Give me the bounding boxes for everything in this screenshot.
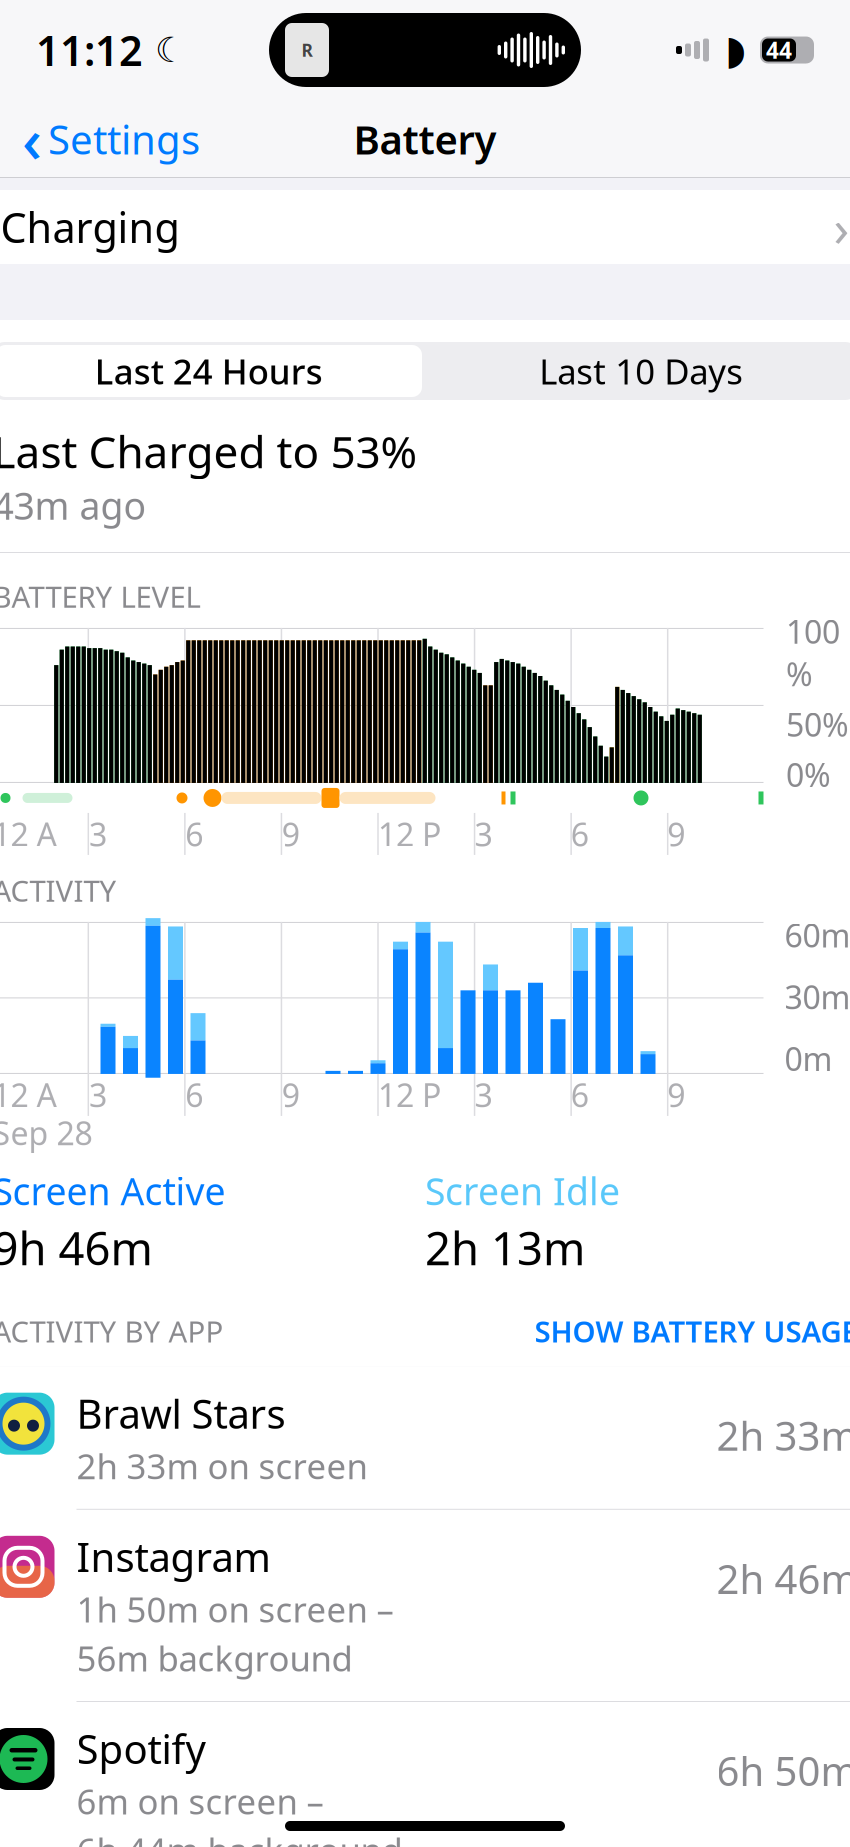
staticText: 12 A <box>0 1074 56 1116</box>
staticText: 6 <box>571 1074 589 1116</box>
staticText: 6 <box>185 1074 203 1116</box>
staticText: 6 <box>185 813 203 855</box>
staticText: 100% <box>786 610 840 695</box>
staticText: 12 P <box>378 1074 441 1116</box>
staticText: › <box>833 193 849 261</box>
staticText: ☾ <box>143 30 186 70</box>
staticText: R <box>301 38 312 61</box>
staticText: ACTIVITY <box>0 871 116 910</box>
staticText: 6h 50m <box>716 1744 850 1797</box>
staticText: 6 <box>571 813 589 855</box>
staticText: Charging <box>0 200 179 254</box>
staticText: 0% <box>786 753 831 796</box>
staticText: 9 <box>667 813 685 855</box>
staticText: ◗ <box>725 27 746 73</box>
staticText: Screen Active <box>0 1166 225 1215</box>
button[interactable]: Spotify <box>0 1702 850 1847</box>
button[interactable]: Last 24 Hours <box>0 342 425 400</box>
staticText: 3 <box>474 1074 492 1116</box>
staticText: 9 <box>282 1074 300 1116</box>
staticText: 2h 33m <box>716 1409 850 1462</box>
staticText: SHOW BATTERY USAGE <box>534 1312 850 1351</box>
staticText: Settings <box>48 112 200 165</box>
staticText: 30m <box>784 976 850 1018</box>
staticText: 2h 33m on screen <box>76 1443 367 1489</box>
button[interactable]: Charging <box>0 190 850 264</box>
staticText: 6m on screen – <box>76 1778 323 1824</box>
staticText: 44 <box>766 35 792 65</box>
staticText: 9h 46m <box>0 1217 152 1278</box>
staticText: 12 A <box>0 813 56 855</box>
staticText: Brawl Stars <box>76 1387 285 1440</box>
staticText: 50% <box>786 703 849 745</box>
staticText: 3 <box>474 813 492 855</box>
staticText: Last Charged to 53% <box>0 422 417 480</box>
staticText: ACTIVITY BY APP <box>0 1312 223 1351</box>
staticText: Screen Idle <box>425 1166 620 1215</box>
button[interactable]: Brawl Stars <box>0 1367 850 1510</box>
staticText: 12 P <box>378 813 441 855</box>
staticText: 9 <box>667 1074 685 1116</box>
staticText: Instagram <box>76 1530 270 1583</box>
staticText: Battery <box>353 112 496 165</box>
button[interactable]: Instagram <box>0 1510 850 1702</box>
staticText: 11:12 <box>36 23 143 77</box>
button[interactable]: Last 10 Days <box>425 342 850 400</box>
staticText: 3 <box>89 1074 107 1116</box>
staticText: 3 <box>89 813 107 855</box>
button[interactable]: SHOW BATTERY USAGE <box>534 1306 850 1357</box>
staticText: 6h 44m background <box>76 1827 402 1847</box>
staticText: 2h 46m <box>716 1552 850 1605</box>
staticText: Sep 28 <box>0 1112 92 1154</box>
button[interactable]: ‹ <box>0 90 222 188</box>
staticText: 60m <box>784 914 850 956</box>
staticText: BATTERY LEVEL <box>0 577 200 616</box>
staticText: 9 <box>282 813 300 855</box>
staticText: 2h 13m <box>425 1217 585 1278</box>
staticText: 0m <box>784 1037 832 1080</box>
staticText: 56m background <box>76 1635 352 1681</box>
staticText: 1h 50m on screen – <box>76 1586 393 1632</box>
staticText: Spotify <box>76 1722 205 1775</box>
staticText: ‹ <box>22 98 42 180</box>
staticText: 43m ago <box>0 480 146 530</box>
staticText: Last 24 Hours <box>95 348 323 394</box>
staticText: Last 10 Days <box>539 348 743 394</box>
